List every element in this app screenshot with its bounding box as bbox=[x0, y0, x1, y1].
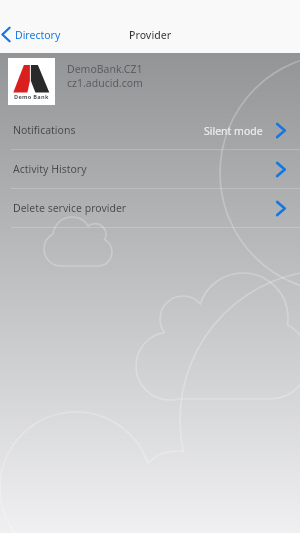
staticText: Silent mode bbox=[204, 124, 263, 138]
staticText: Activity History bbox=[13, 162, 87, 176]
button[interactable]: Activity History bbox=[0, 150, 300, 189]
button[interactable]: Notifications bbox=[0, 111, 300, 150]
staticText: Notifications bbox=[13, 123, 76, 137]
staticText: Delete service provider bbox=[13, 201, 127, 215]
button[interactable]: Directory bbox=[0, 22, 71, 47]
button[interactable]: Delete service provider bbox=[0, 189, 300, 228]
staticText: Provider bbox=[129, 28, 172, 42]
staticText: cz1.aducid.com bbox=[67, 76, 143, 90]
staticText: Directory bbox=[15, 28, 61, 42]
staticText: DemoBank.CZ1 bbox=[67, 62, 143, 76]
staticText: Demo Bank bbox=[14, 93, 49, 101]
